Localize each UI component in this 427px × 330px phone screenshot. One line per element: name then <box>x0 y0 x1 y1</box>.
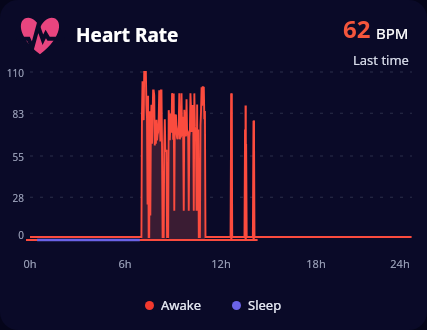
staticText: 55 <box>0 150 24 164</box>
staticText: 6h <box>110 256 140 271</box>
staticText: 24h <box>385 256 415 271</box>
staticText: Awake <box>161 296 202 314</box>
staticText: 110 <box>0 66 24 80</box>
staticText: 0 <box>0 228 24 242</box>
staticText: Sleep <box>248 296 282 314</box>
button[interactable]: Awake <box>141 294 206 316</box>
staticText: 28 <box>0 191 24 205</box>
staticText: BPM <box>376 23 409 43</box>
staticText: Heart Rate <box>76 22 179 48</box>
staticText: 62 <box>343 12 371 45</box>
button[interactable]: Sleep <box>228 294 286 316</box>
staticText: 18h <box>301 256 331 271</box>
staticText: 83 <box>0 107 24 121</box>
staticText: Last time <box>353 51 409 66</box>
staticText: 0h <box>15 256 45 271</box>
other: Heart rate icon <box>16 10 64 58</box>
staticText: 12h <box>206 256 236 271</box>
